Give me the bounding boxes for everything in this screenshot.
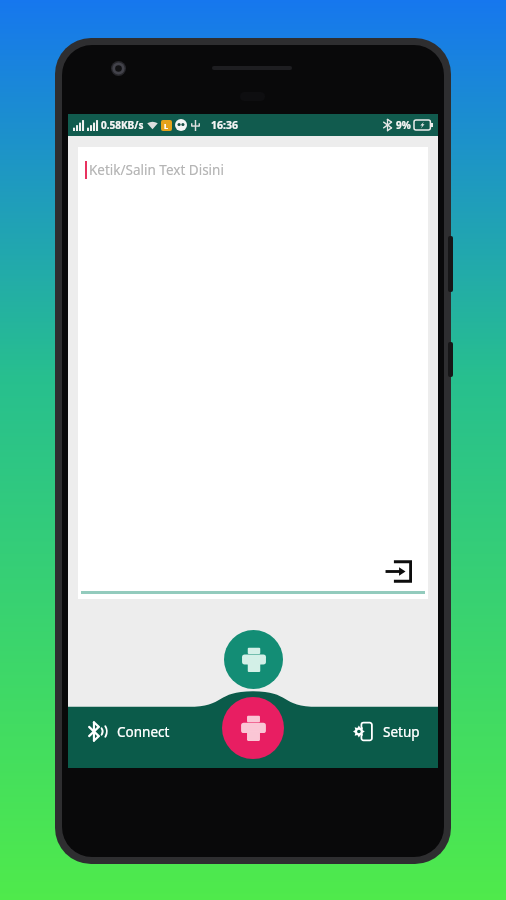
- staticText: Ketik/Salin Text Disini: [89, 161, 224, 179]
- staticText: 9%: [396, 118, 411, 132]
- staticText: 16:36: [211, 118, 238, 132]
- staticText: Setup: [383, 723, 420, 741]
- staticText: 0.58KB/s: [101, 118, 144, 132]
- button[interactable]: Connect: [82, 716, 175, 747]
- button[interactable]: Setup: [348, 716, 425, 747]
- button[interactable]: Print: [222, 697, 284, 759]
- staticText: Connect: [117, 723, 170, 741]
- staticText: L: [164, 121, 169, 131]
- button[interactable]: Ketik/Salin Text Disini: [78, 147, 428, 599]
- button[interactable]: Insert text: [381, 554, 415, 588]
- button[interactable]: Print test: [224, 630, 283, 689]
